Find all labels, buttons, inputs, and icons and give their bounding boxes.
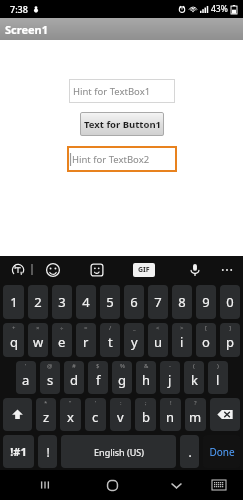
button[interactable]: > <box>172 323 192 357</box>
staticText: @ <box>47 362 53 370</box>
staticText: i <box>180 333 184 351</box>
button[interactable]: !#1 <box>3 435 34 468</box>
button[interactable]: ? <box>185 398 206 431</box>
button[interactable]: ' <box>16 361 36 394</box>
staticText: b <box>142 408 150 426</box>
staticText: ( <box>193 362 195 370</box>
staticText: l <box>216 371 220 389</box>
button[interactable]: Shift <box>3 398 32 431</box>
staticText: 5 <box>106 293 114 311</box>
button[interactable]: $ <box>88 361 108 394</box>
button[interactable]: × <box>28 323 48 357</box>
staticText: × <box>36 324 40 332</box>
staticText: f <box>96 371 101 389</box>
staticText: ! <box>170 399 172 407</box>
staticText: ' <box>25 362 27 370</box>
staticText: 7:38 <box>10 3 28 15</box>
button[interactable]: ! <box>38 435 57 468</box>
staticText: ! <box>46 444 50 460</box>
button[interactable]: # <box>64 361 84 394</box>
staticText: / <box>109 324 112 332</box>
staticText: 4 <box>82 293 90 311</box>
button[interactable]: ) <box>208 361 228 394</box>
button[interactable]: ! <box>160 398 181 431</box>
button[interactable]: Hide keyboard <box>163 472 189 498</box>
staticText: < <box>156 324 160 332</box>
staticText: d <box>70 371 78 389</box>
button[interactable]: Done <box>203 435 240 468</box>
button[interactable]: ] <box>220 323 240 357</box>
button[interactable]: 2 <box>28 285 48 319</box>
staticText: !#1 <box>10 444 27 459</box>
button[interactable]: % <box>112 361 132 394</box>
staticText: 1 <box>10 293 18 311</box>
staticText: Hint for TextBox1 <box>73 85 151 98</box>
staticText: y <box>131 333 138 351</box>
button[interactable]: + <box>3 323 24 357</box>
button[interactable]: 8 <box>172 285 192 319</box>
staticText: - <box>169 362 171 370</box>
button[interactable]: Home <box>99 472 125 498</box>
button[interactable]: * <box>36 398 56 431</box>
staticText: k <box>191 371 198 389</box>
button[interactable]: Emoji <box>43 260 63 280</box>
button[interactable]: English (US) <box>61 435 176 468</box>
staticText: 2 <box>34 293 42 311</box>
staticText: h <box>142 371 151 389</box>
button[interactable]: : <box>110 398 131 431</box>
button[interactable]: 9 <box>196 285 216 319</box>
button[interactable]: & <box>136 361 156 394</box>
button[interactable]: Voice input <box>185 260 205 280</box>
button[interactable]: ' <box>85 398 106 431</box>
staticText: $ <box>96 362 100 370</box>
button[interactable]: 3 <box>52 285 72 319</box>
staticText: m <box>189 408 202 426</box>
button[interactable]: Change keyboard <box>206 472 232 498</box>
staticText: # <box>72 362 76 370</box>
staticText: ? <box>194 399 197 407</box>
staticText: v <box>117 408 124 426</box>
staticText: 43% <box>211 3 228 15</box>
button[interactable]: ( <box>184 361 204 394</box>
staticText: ; <box>145 399 147 407</box>
button[interactable]: 6 <box>124 285 144 319</box>
staticText: * <box>44 399 48 407</box>
button[interactable]: 0 <box>220 285 240 319</box>
staticText: 3 <box>58 293 66 311</box>
staticText: 7 <box>154 293 162 311</box>
button[interactable]: Hint for TextBox2 <box>67 146 177 172</box>
staticText: [ <box>205 324 207 332</box>
staticText: Text for Button1 <box>84 118 161 131</box>
button[interactable]: Hint for TextBox1 <box>69 79 175 103</box>
button[interactable]: ÷ <box>52 323 72 357</box>
button[interactable]: 7 <box>148 285 168 319</box>
staticText: ] <box>229 324 231 332</box>
button[interactable]: / <box>100 323 120 357</box>
button[interactable]: < <box>148 323 168 357</box>
button[interactable]: 5 <box>100 285 120 319</box>
staticText: % <box>120 362 125 370</box>
button[interactable]: @ <box>40 361 60 394</box>
button[interactable]: Translate <box>8 260 28 280</box>
button[interactable]: Recents <box>32 472 58 498</box>
button[interactable]: 1 <box>3 285 24 319</box>
button[interactable]: Stickers <box>87 260 107 280</box>
button[interactable]: Text for Button1 <box>80 112 164 136</box>
staticText: x <box>67 408 74 426</box>
button[interactable]: GIF <box>133 263 155 277</box>
button[interactable]: More options <box>217 260 237 280</box>
button[interactable]: . <box>180 435 199 468</box>
button[interactable]: Backspace <box>210 398 240 431</box>
button[interactable]: [ <box>196 323 216 357</box>
button[interactable]: " <box>60 398 81 431</box>
button[interactable]: _ <box>124 323 144 357</box>
staticText: g <box>118 371 126 389</box>
button[interactable]: = <box>76 323 96 357</box>
staticText: r <box>83 333 89 351</box>
staticText: n <box>166 408 175 426</box>
staticText: t <box>108 333 113 351</box>
button[interactable]: 4 <box>76 285 96 319</box>
button[interactable]: - <box>160 361 180 394</box>
button[interactable]: ; <box>135 398 156 431</box>
staticText: Screen1 <box>5 22 49 37</box>
